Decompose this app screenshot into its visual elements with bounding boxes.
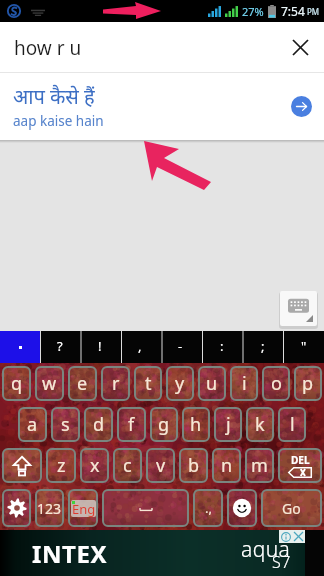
- button[interactable]: s: [52, 408, 79, 441]
- button[interactable]: Go: [262, 490, 321, 526]
- button[interactable]: c: [114, 449, 141, 482]
- staticText: ,: [138, 337, 142, 355]
- button[interactable]: d: [85, 408, 112, 441]
- staticText: j: [226, 412, 231, 437]
- staticText: l: [290, 412, 295, 437]
- staticText: :: [220, 337, 224, 355]
- staticText: aap kaise hain: [13, 112, 104, 130]
- staticText: 27%: [242, 4, 264, 19]
- staticText: m: [251, 453, 268, 478]
- staticText: DEL: [291, 453, 310, 467]
- staticText: g: [158, 412, 170, 437]
- button[interactable]: Eng: [69, 490, 97, 526]
- staticText: S7: [272, 551, 291, 573]
- button[interactable]: x: [81, 449, 108, 482]
- button[interactable]: Ad info: [279, 530, 292, 543]
- staticText: PM: [307, 6, 320, 17]
- button[interactable]: Keyboard: [280, 291, 317, 326]
- staticText: s: [61, 412, 70, 437]
- button[interactable]: f: [118, 408, 145, 441]
- staticText: Eng: [72, 500, 96, 517]
- button[interactable]: l: [279, 408, 305, 441]
- button[interactable]: -: [160, 331, 201, 363]
- button[interactable]: !: [80, 331, 120, 363]
- staticText: i: [242, 371, 247, 396]
- button[interactable]: m: [246, 449, 273, 482]
- staticText: d: [93, 412, 105, 437]
- staticText: ": [301, 337, 307, 355]
- staticText: h: [190, 412, 202, 437]
- button[interactable]: 123: [36, 490, 63, 526]
- button[interactable]: z: [47, 449, 75, 482]
- button[interactable]: .,: [194, 490, 222, 526]
- staticText: n: [221, 453, 233, 478]
- button[interactable]: w: [36, 367, 63, 400]
- staticText: Go: [282, 499, 301, 518]
- button[interactable]: Period: [0, 331, 40, 363]
- staticText: r: [112, 371, 120, 396]
- staticText: ;: [261, 337, 265, 355]
- button[interactable]: INTEX: [0, 530, 305, 576]
- button[interactable]: Clear: [276, 22, 324, 73]
- button[interactable]: Shift: [3, 449, 41, 482]
- staticText: u: [206, 371, 218, 396]
- button[interactable]: v: [147, 449, 174, 482]
- button[interactable]: e: [69, 367, 96, 400]
- button[interactable]: Emoji: [228, 490, 256, 526]
- button[interactable]: p: [295, 367, 321, 400]
- button[interactable]: :: [201, 331, 242, 363]
- staticText: -: [178, 337, 183, 355]
- button[interactable]: Delete: [279, 449, 321, 482]
- button[interactable]: k: [247, 408, 273, 441]
- button[interactable]: o: [263, 367, 289, 400]
- staticText: z: [57, 453, 66, 478]
- button[interactable]: Settings: [3, 490, 30, 526]
- button[interactable]: ?: [40, 331, 80, 363]
- staticText: p: [302, 371, 314, 396]
- button[interactable]: Translate: [291, 96, 312, 117]
- button[interactable]: b: [180, 449, 207, 482]
- button[interactable]: i: [231, 367, 257, 400]
- staticText: q: [11, 371, 23, 396]
- button[interactable]: g: [151, 408, 177, 441]
- staticText: 123: [37, 499, 62, 518]
- staticText: INTEX: [32, 537, 108, 570]
- staticText: k: [255, 412, 265, 437]
- staticText: o: [271, 371, 282, 396]
- staticText: v: [156, 453, 166, 478]
- button[interactable]: ,: [120, 331, 160, 363]
- button[interactable]: Close ad: [292, 530, 305, 543]
- staticText: t: [145, 371, 152, 396]
- button[interactable]: आप कैसे हैं: [0, 73, 324, 140]
- button[interactable]: n: [213, 449, 240, 482]
- button[interactable]: q: [3, 367, 30, 400]
- staticText: x: [90, 453, 100, 478]
- button[interactable]: h: [183, 408, 209, 441]
- staticText: y: [175, 371, 185, 396]
- staticText: ?: [57, 337, 63, 355]
- staticText: f: [128, 412, 135, 437]
- staticText: a: [27, 412, 38, 437]
- staticText: 7:54: [281, 3, 305, 19]
- staticText: .,: [205, 499, 212, 517]
- button[interactable]: u: [199, 367, 225, 400]
- button[interactable]: ;: [242, 331, 283, 363]
- button[interactable]: a: [19, 408, 46, 441]
- button[interactable]: ": [283, 331, 324, 363]
- button[interactable]: y: [167, 367, 193, 400]
- button[interactable]: Space: [103, 490, 188, 526]
- staticText: c: [123, 453, 132, 478]
- staticText: आप कैसे हैं: [13, 83, 95, 110]
- staticText: b: [188, 453, 200, 478]
- staticText: how r u: [14, 35, 82, 61]
- staticText: w: [42, 371, 57, 396]
- button[interactable]: r: [102, 367, 129, 400]
- staticText: aqua: [241, 535, 291, 564]
- button[interactable]: j: [215, 408, 241, 441]
- staticText: e: [77, 371, 88, 396]
- button[interactable]: t: [135, 367, 161, 400]
- staticText: !: [98, 337, 102, 355]
